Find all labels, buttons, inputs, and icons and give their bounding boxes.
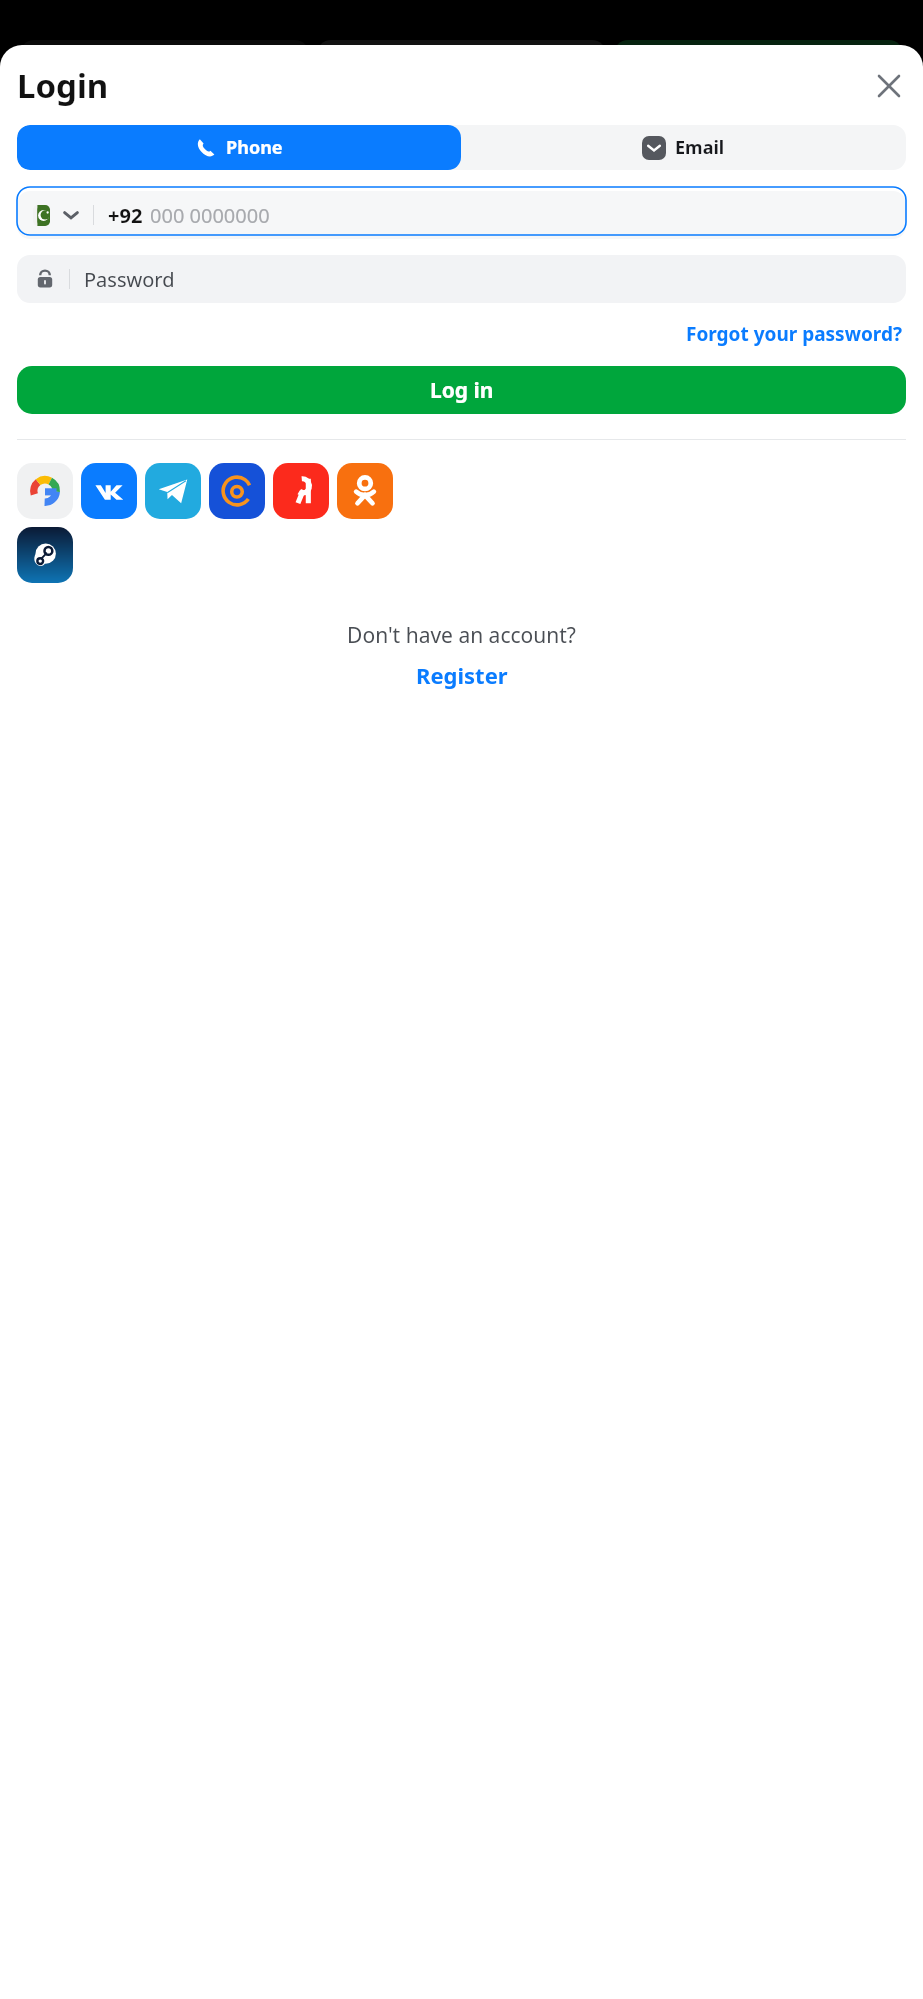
button[interactable]: Sign in with Yandex xyxy=(273,463,329,519)
button[interactable]: Close xyxy=(872,69,906,103)
button[interactable]: Register xyxy=(408,658,516,692)
staticText: Login xyxy=(17,63,109,108)
staticText: Phone xyxy=(226,135,283,160)
button[interactable]: +92 xyxy=(17,191,906,239)
button[interactable]: Sign in with Telegram xyxy=(145,463,201,519)
staticText: Email xyxy=(675,135,725,160)
staticText: Forgot your password? xyxy=(686,321,902,347)
staticText: Don't have an account? xyxy=(347,621,576,650)
staticText: Register xyxy=(416,660,508,690)
button[interactable]: Password xyxy=(17,255,906,303)
staticText: Log in xyxy=(430,376,494,405)
button[interactable]: Sign in with Odnoklassniki xyxy=(337,463,393,519)
button[interactable]: Log in xyxy=(17,366,906,414)
staticText: 000 0000000 xyxy=(150,202,270,229)
button[interactable]: Phone xyxy=(17,125,461,170)
button[interactable]: Sign in with Mail.ru xyxy=(209,463,265,519)
button[interactable]: Sign in with Steam xyxy=(17,527,73,583)
button[interactable]: Forgot your password? xyxy=(682,317,906,351)
button[interactable]: Email xyxy=(461,125,906,170)
button[interactable]: Sign in with VK xyxy=(81,463,137,519)
button[interactable]: Sign in with Google xyxy=(17,463,73,519)
staticText: Password xyxy=(84,266,175,293)
staticText: +92 xyxy=(108,202,143,229)
